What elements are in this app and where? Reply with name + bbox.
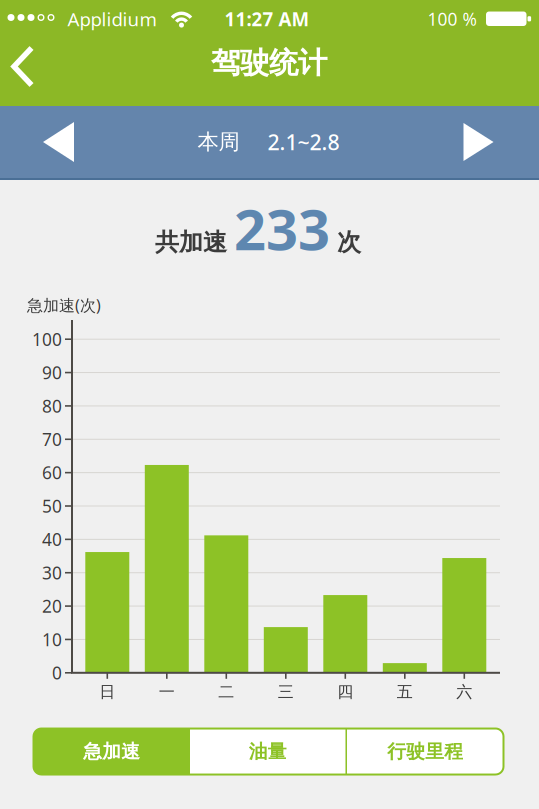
staticText: Applidium (67, 7, 156, 31)
staticText: 0 (52, 661, 62, 684)
staticText: 50 (42, 494, 62, 517)
staticText: 驾驶统计 (211, 45, 327, 81)
button[interactable]: Next week (463, 123, 493, 161)
staticText: 90 (42, 361, 62, 384)
staticText: 80 (42, 394, 62, 417)
staticText: 11:27 AM (224, 7, 309, 31)
staticText: 四 (337, 682, 353, 702)
staticText: 次 (337, 227, 361, 257)
staticText: 六 (456, 682, 472, 702)
button[interactable]: Back (7, 45, 51, 89)
staticText: 一 (159, 682, 175, 702)
staticText: 100 % (427, 7, 476, 30)
button[interactable]: 行驶里程 (347, 728, 503, 774)
staticText: 30 (42, 561, 62, 584)
staticText: 三 (278, 682, 294, 702)
staticText: 70 (42, 428, 62, 451)
staticText: 2.1~2.8 (267, 128, 339, 156)
staticText: 10 (42, 628, 62, 651)
staticText: 本周 (197, 129, 239, 155)
staticText: 油量 (249, 740, 287, 763)
staticText: 60 (42, 461, 62, 484)
staticText: 40 (42, 528, 62, 551)
button[interactable]: 油量 (190, 728, 345, 774)
staticText: 100 (32, 328, 62, 351)
staticText: 日 (99, 682, 115, 702)
staticText: 共加速 (155, 227, 227, 257)
button[interactable]: Previous week (43, 122, 74, 162)
staticText: 二 (218, 682, 234, 702)
staticText: 行驶里程 (387, 740, 463, 763)
staticText: 五 (397, 682, 413, 702)
button[interactable]: 急加速 (33, 728, 190, 774)
staticText: 急加速(次) (27, 294, 101, 316)
staticText: 急加速 (83, 740, 140, 763)
staticText: 20 (42, 595, 62, 618)
staticText: 233 (234, 191, 330, 266)
